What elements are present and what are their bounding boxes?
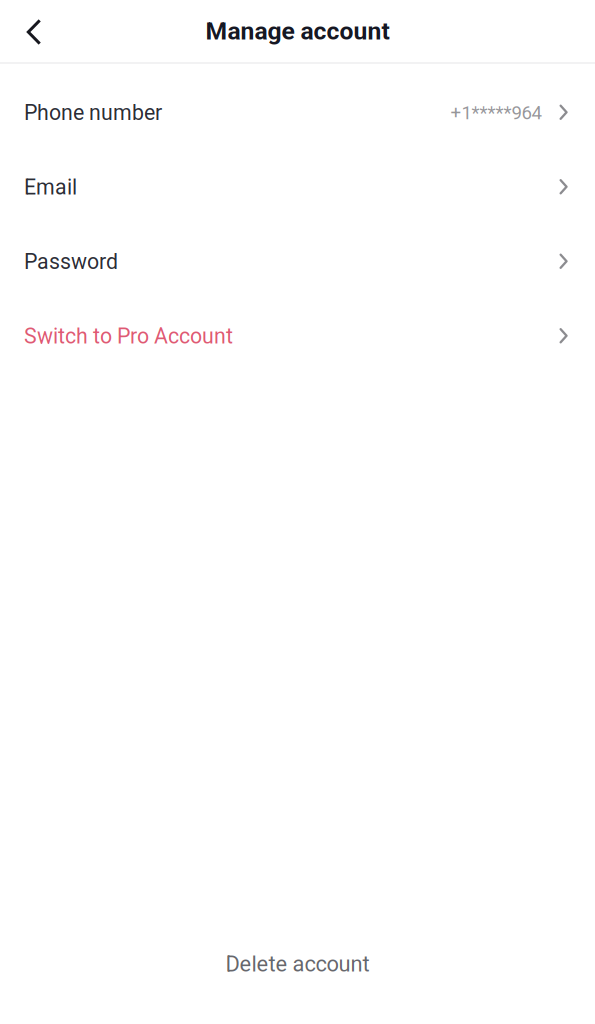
button[interactable]: Phone number [0, 75, 595, 150]
staticText: +1*****964 [450, 102, 541, 124]
button[interactable]: Password [0, 224, 595, 299]
staticText: Manage account [205, 16, 389, 45]
staticText: Phone number [24, 100, 162, 125]
button[interactable]: Email [0, 150, 595, 224]
staticText: Switch to Pro Account [24, 324, 233, 349]
button[interactable]: Switch to Pro Account [0, 299, 595, 373]
button[interactable]: Back [0, 0, 62, 62]
staticText: Password [24, 249, 118, 274]
staticText: Email [24, 175, 77, 200]
staticText: Delete account [225, 951, 369, 977]
button[interactable]: Delete account [0, 942, 595, 986]
